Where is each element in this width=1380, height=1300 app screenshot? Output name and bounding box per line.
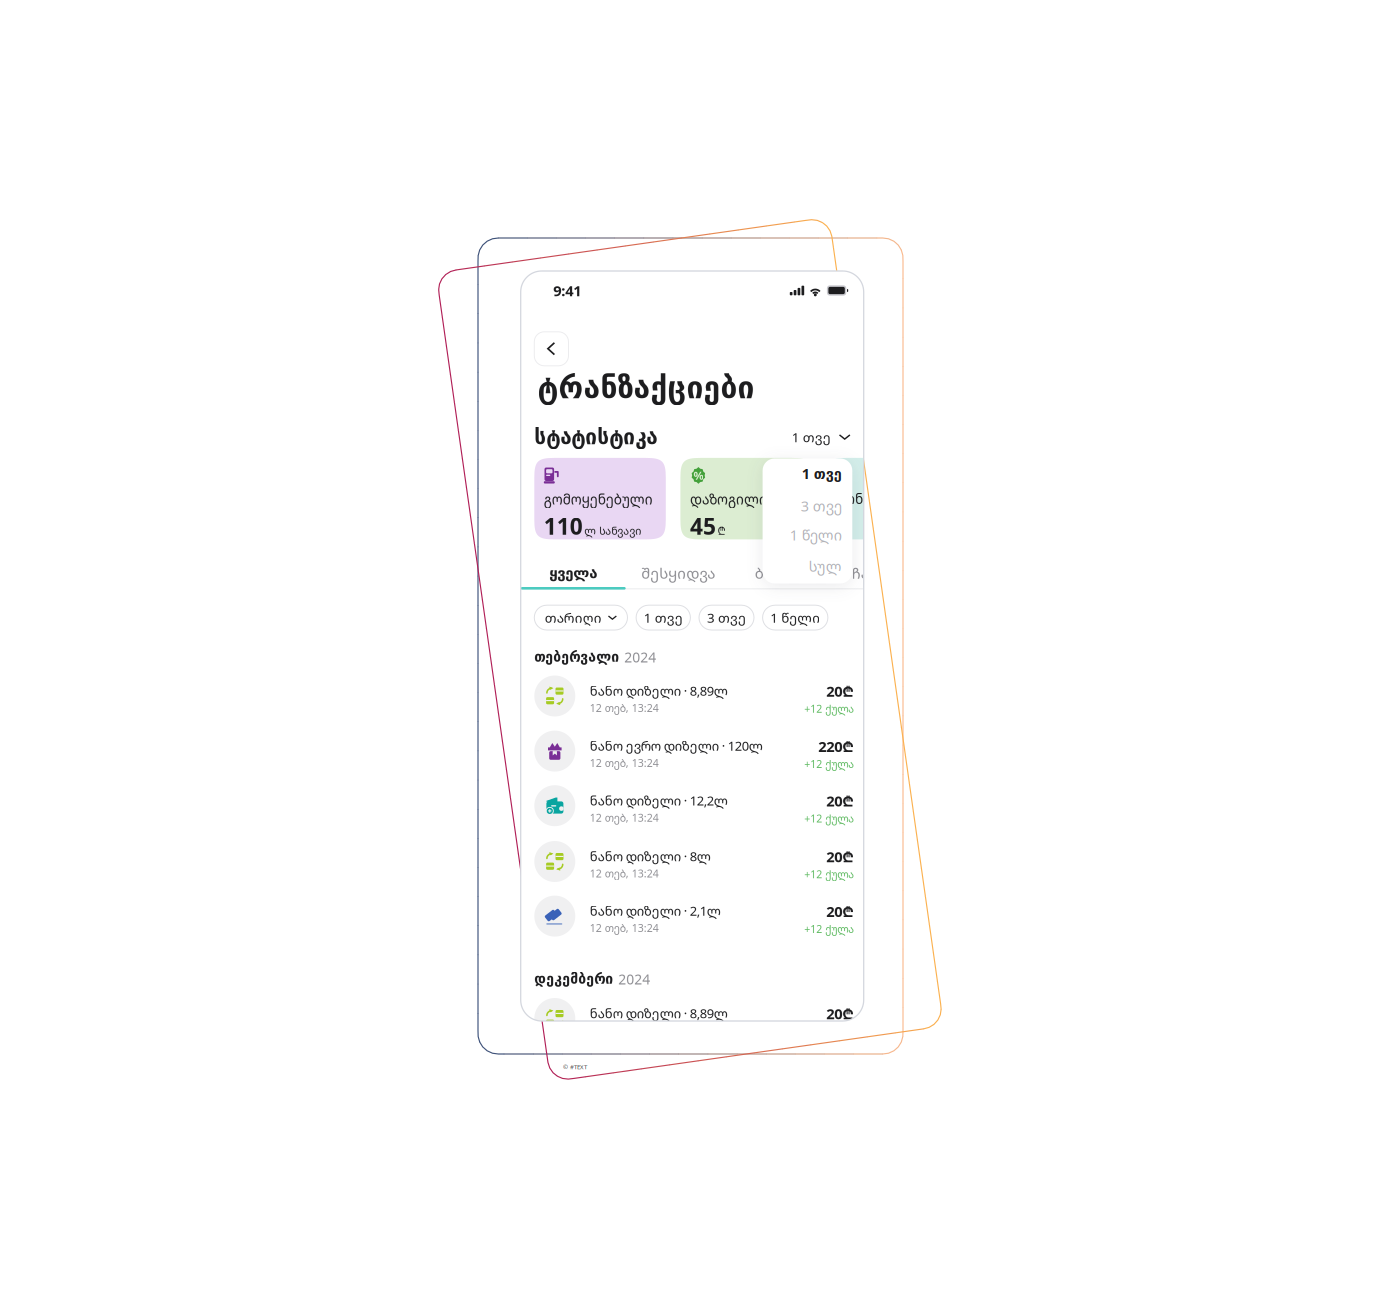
button[interactable]: ჩარიცხვა: [836, 558, 941, 588]
staticText: 9:41: [553, 280, 581, 300]
staticText: 45: [690, 510, 716, 541]
staticText: დეკემბერი: [534, 971, 613, 987]
staticText: გომოყენებული: [544, 490, 653, 508]
staticText: ნანო ევრო დიზელი · 120ლ: [590, 737, 763, 755]
staticText: +12 ქულა: [804, 757, 854, 771]
staticText: 1 თვე: [792, 428, 831, 446]
staticText: ₾: [717, 523, 725, 538]
staticText: 12 თებ, 13:24: [590, 701, 659, 715]
staticText: ტრანზაქციები: [537, 371, 754, 405]
staticText: ბონუსი: [836, 489, 887, 508]
staticText: სტატისტიკა: [534, 425, 657, 449]
staticText: 220₾: [818, 736, 854, 756]
button[interactable]: 1 თვე: [763, 461, 842, 485]
button[interactable]: Back: [534, 332, 568, 366]
staticText: 12 თებ, 13:24: [590, 756, 659, 770]
button[interactable]: 1 წელი: [763, 523, 842, 547]
staticText: 12 თებ, 13:24: [590, 921, 659, 935]
staticText: 20₾: [826, 901, 854, 921]
staticText: 110: [544, 510, 583, 541]
staticText: 3 თვე: [707, 608, 746, 627]
staticText: 1 წელი: [790, 525, 842, 545]
button[interactable]: 1 თვე: [636, 605, 690, 630]
staticText: 20₾: [826, 791, 854, 811]
staticText: შესყიდვა: [641, 563, 715, 583]
button[interactable]: 1 წელი: [763, 605, 828, 630]
staticText: თებერვალი: [534, 649, 619, 665]
staticText: ბონუსი: [755, 563, 812, 583]
staticText: ჩარიცხვა: [852, 563, 925, 583]
staticText: 1 წელი: [770, 608, 820, 627]
staticText: +12 ქულა: [804, 922, 854, 936]
button[interactable]: შესყიდვა: [626, 558, 731, 588]
button[interactable]: თარიღი: [534, 605, 627, 630]
staticText: 12 თებ, 13:24: [590, 866, 659, 880]
staticText: ნანო დიზელი · 8,89ლ: [590, 1004, 728, 1022]
button[interactable]: ყველა: [521, 558, 626, 588]
button[interactable]: 1 თვე: [792, 426, 851, 448]
staticText: 12 თებ, 13:24: [590, 810, 659, 825]
staticText: +12 ქულა: [804, 702, 854, 716]
staticText: +12 ქულა: [804, 867, 854, 881]
staticText: 3 თვე: [801, 496, 842, 516]
staticText: 2024: [618, 970, 650, 988]
button[interactable]: 3 თვე: [763, 494, 842, 518]
staticText: 2024: [624, 648, 656, 666]
staticText: დაზოგილი: [690, 490, 767, 508]
staticText: ლ სანვავი: [584, 523, 641, 538]
staticText: 20₾: [826, 1004, 854, 1024]
staticText: ნანო დიზელი · 8ლ: [590, 847, 711, 865]
staticText: ნანო დიზელი · 2,1ლ: [590, 902, 721, 920]
button[interactable]: 3 თვე: [699, 605, 754, 630]
staticText: 1 თვე: [644, 608, 683, 627]
button[interactable]: ბონუსი: [731, 558, 836, 588]
staticText: 2: [836, 510, 849, 541]
staticText: 20₾: [826, 681, 854, 701]
staticText: © #TEXT: [563, 1063, 587, 1071]
staticText: +12 ქულა: [804, 811, 854, 826]
button[interactable]: სულ: [763, 554, 842, 578]
staticText: ყველა: [549, 564, 597, 582]
staticText: ნანო დიზელი · 8,89ლ: [590, 682, 728, 699]
staticText: 20₾: [826, 847, 854, 867]
staticText: %: [693, 468, 703, 483]
staticText: 1 თვე: [802, 464, 842, 483]
staticText: სულ: [809, 556, 842, 576]
staticText: თარიღი: [545, 608, 602, 627]
staticText: ნანო დიზელი · 12,2ლ: [590, 792, 728, 809]
